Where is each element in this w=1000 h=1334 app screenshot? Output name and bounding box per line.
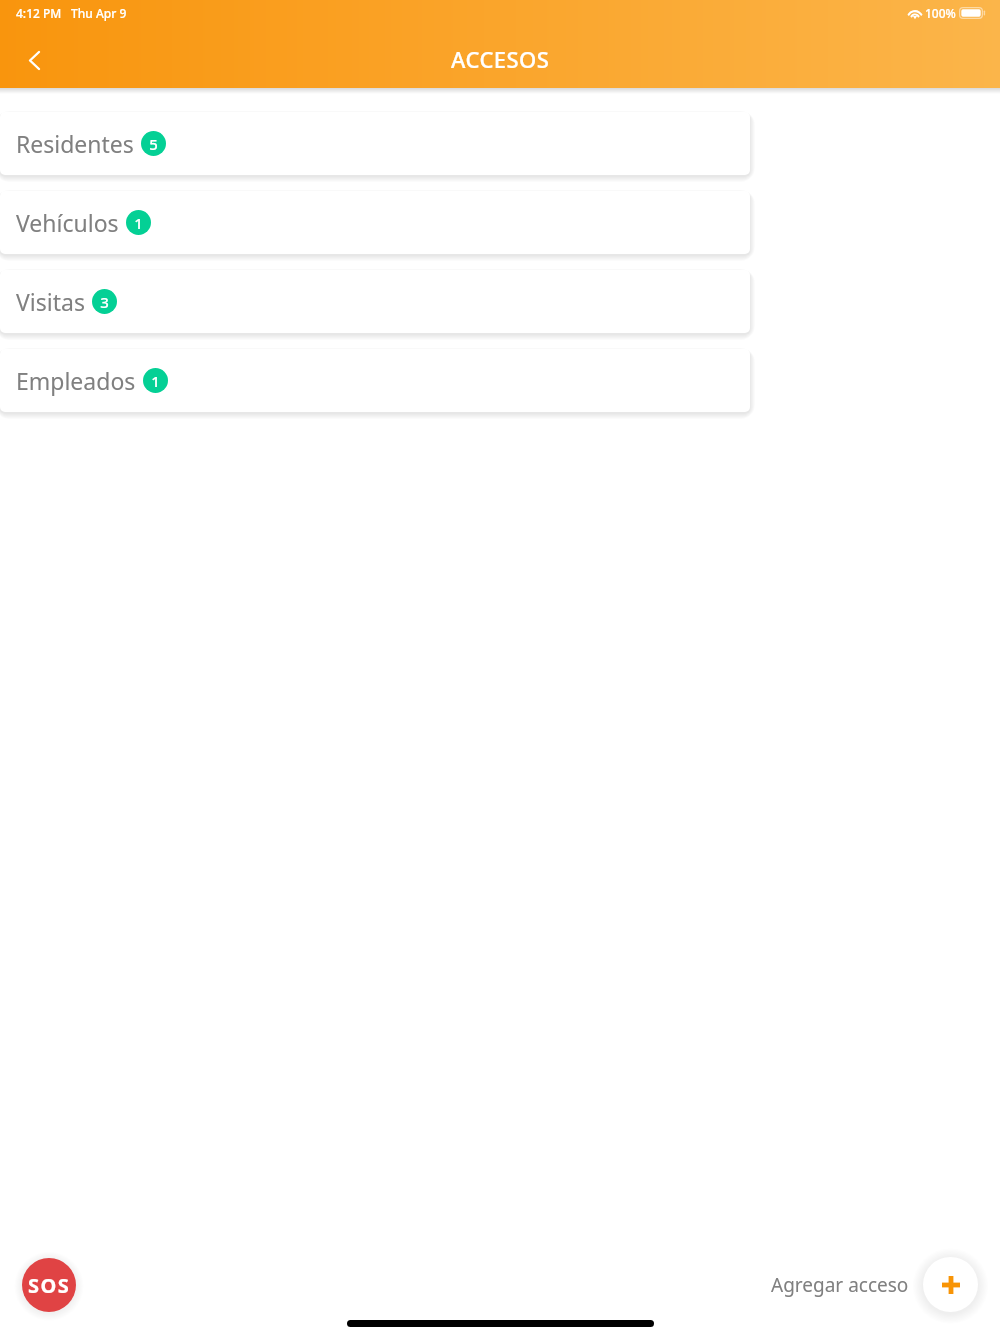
- staticText: 1: [134, 213, 143, 233]
- button[interactable]: Empleados: [0, 349, 750, 412]
- staticText: 100%: [925, 5, 956, 21]
- button[interactable]: Residentes: [0, 112, 750, 175]
- staticText: Empleados: [16, 365, 136, 396]
- staticText: SOS: [28, 1272, 71, 1299]
- button[interactable]: Visitas: [0, 270, 750, 333]
- button[interactable]: Back: [11, 36, 57, 82]
- staticText: Agregar acceso: [771, 1272, 909, 1298]
- staticText: Vehículos: [16, 207, 119, 238]
- staticText: Residentes: [16, 128, 134, 159]
- button[interactable]: Agregar acceso: [771, 1257, 978, 1312]
- staticText: 4:12 PM: [16, 5, 62, 21]
- button[interactable]: Vehículos: [0, 191, 750, 254]
- staticText: Thu Apr 9: [71, 5, 127, 21]
- staticText: Visitas: [16, 286, 85, 317]
- button[interactable]: Agregar acceso: [923, 1257, 978, 1312]
- staticText: 5: [149, 134, 158, 154]
- button[interactable]: SOS: [22, 1258, 76, 1312]
- staticText: ACCESOS: [451, 44, 550, 74]
- staticText: 3: [100, 292, 109, 312]
- staticText: 1: [151, 371, 160, 391]
